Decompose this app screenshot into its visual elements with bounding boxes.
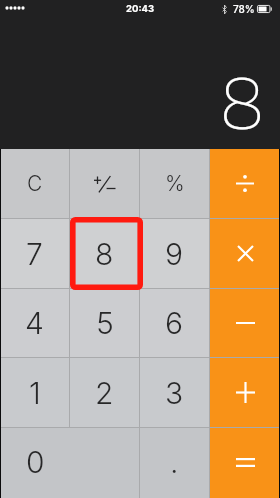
button[interactable]: Subtract xyxy=(210,289,280,357)
staticText: 7 xyxy=(26,236,43,272)
staticText: 5 xyxy=(96,305,114,341)
button[interactable]: 9 xyxy=(140,219,209,288)
staticText: 4 xyxy=(25,305,44,341)
staticText: 8 xyxy=(95,236,114,272)
button[interactable]: Plus minus xyxy=(70,149,139,218)
staticText: 20:43 xyxy=(126,3,155,14)
staticText: 1 xyxy=(29,375,41,411)
staticText: C xyxy=(27,171,43,196)
button[interactable]: 3 xyxy=(140,358,209,427)
staticText: 2 xyxy=(95,375,114,411)
button[interactable]: C xyxy=(0,149,69,218)
staticText: . xyxy=(170,444,179,480)
button[interactable]: 8 xyxy=(70,219,139,288)
button[interactable]: Multiply xyxy=(210,219,280,288)
staticText: 8 xyxy=(220,58,265,144)
button[interactable]: Equals xyxy=(210,428,280,498)
button[interactable]: Add xyxy=(210,358,280,427)
staticText: 9 xyxy=(165,236,184,272)
staticText: 6 xyxy=(165,305,184,341)
button[interactable]: Divide xyxy=(210,149,280,218)
button[interactable]: . xyxy=(140,428,209,498)
button[interactable]: 1 xyxy=(0,358,69,427)
staticText: 78% xyxy=(233,3,255,15)
button[interactable]: 7 xyxy=(0,219,69,288)
button[interactable]: % xyxy=(140,149,209,218)
staticText: % xyxy=(165,171,185,196)
button[interactable]: 6 xyxy=(140,289,209,357)
staticText: 3 xyxy=(165,375,184,411)
staticText: 0 xyxy=(26,444,45,480)
button[interactable]: 0 xyxy=(0,428,139,498)
button[interactable]: 4 xyxy=(0,289,69,357)
button[interactable]: 2 xyxy=(70,358,139,427)
button[interactable]: 5 xyxy=(70,289,139,357)
